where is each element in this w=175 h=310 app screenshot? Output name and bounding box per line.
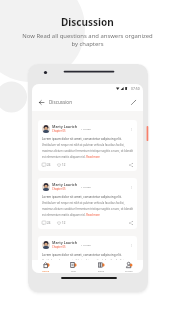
staticText: Chapter 05 [52,129,66,133]
button[interactable]: Back [37,98,46,107]
button[interactable]: Share [128,220,133,225]
staticText: 1 hr ago [81,243,91,246]
button[interactable]: 24 [42,163,51,167]
staticText: 12 [62,221,66,225]
button[interactable]: 24 [42,221,51,225]
button[interactable]: 12 [57,221,66,225]
button[interactable]: Edit [129,98,138,107]
staticText: Vestibulum vel neque est nibh at pulvina… [42,143,133,158]
staticText: Test [71,269,76,272]
staticText: Lorem ipsum dolor sit amet, consectetur … [42,253,122,257]
staticText: Chapter 05 [52,187,66,191]
staticText: Marty Laurich [52,182,78,187]
button[interactable]: More options [129,185,133,189]
staticText: Chapter 05 [52,245,66,249]
staticText: Discussion [49,99,72,105]
staticText: 07:50 [131,86,140,91]
button[interactable]: Profile [115,260,143,273]
staticText: Discussion [61,15,114,29]
staticText: 24 [47,221,51,225]
button[interactable]: More options [129,127,133,131]
staticText: Lorem ipsum dolor sit amet, consectetur … [42,195,122,199]
staticText: 24 [47,163,51,167]
button[interactable]: Home [32,260,59,273]
staticText: Vestibulum vel neque est nibh at pulvina… [42,201,133,216]
button[interactable]: Share [128,162,133,167]
button[interactable]: Marty Laurich [38,120,137,171]
staticText: Marty Laurich [52,124,78,129]
button[interactable]: Marty Laurich [38,236,137,273]
staticText: 12 [62,163,66,167]
staticText: Vestibulum vel neque est nibh at pulvina… [42,259,133,273]
staticText: Profile [125,269,133,272]
staticText: 1 hr ago [81,127,91,130]
button[interactable]: 12 [57,163,66,167]
staticText: 1 hr ago [81,185,91,188]
button[interactable]: Marty Laurich [38,178,137,229]
button[interactable]: More options [129,243,133,247]
staticText: Now Read all questions and answers organ… [22,32,153,48]
button[interactable]: Test [59,260,87,273]
button[interactable]: Book [87,260,115,273]
staticText: Marty Laurich [52,240,78,245]
staticText: Lorem ipsum dolor sit amet, consectetur … [42,137,122,141]
staticText: Home [42,269,50,272]
staticText: Book [98,269,104,272]
